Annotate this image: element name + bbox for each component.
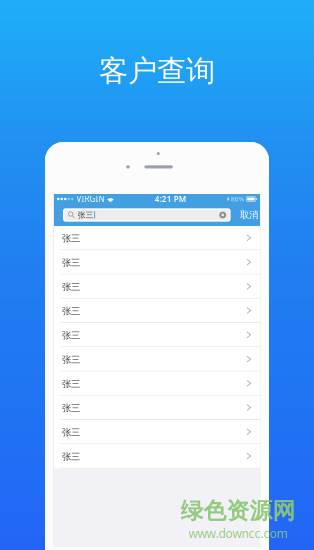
button[interactable]: 张三	[54, 274, 260, 299]
button[interactable]: 张三	[54, 226, 260, 250]
staticText: 张三	[62, 281, 80, 293]
staticText: 张三	[62, 378, 80, 390]
staticText: 86%	[231, 195, 245, 203]
staticText: 张三	[62, 402, 80, 414]
staticText: 张三	[62, 305, 80, 317]
staticText: 4:21 PM	[155, 194, 186, 204]
staticText: 张三	[62, 451, 80, 462]
staticText: 张三	[62, 354, 80, 365]
button[interactable]: 张三	[54, 323, 260, 347]
staticText: 绿色资源网	[180, 497, 295, 525]
button[interactable]: 张三	[54, 250, 260, 274]
staticText: 张三	[62, 330, 80, 341]
button[interactable]: 张三	[54, 396, 260, 420]
staticText: 张三	[77, 210, 93, 220]
button[interactable]: 张三	[54, 347, 260, 371]
staticText: 张三	[62, 233, 80, 244]
staticText: www.downcc.com	[188, 525, 287, 541]
button[interactable]: 张三	[54, 420, 260, 444]
staticText: 客户查询	[99, 53, 215, 89]
staticText: 张三	[62, 427, 80, 438]
button[interactable]: 张三	[54, 371, 260, 396]
staticText: VIRGIN	[76, 194, 104, 204]
staticText: 取消	[240, 209, 258, 221]
staticText: 张三	[62, 257, 80, 268]
button[interactable]: 张三	[54, 444, 260, 468]
button[interactable]: 张三	[54, 299, 260, 323]
button[interactable]: 取消	[239, 208, 259, 221]
